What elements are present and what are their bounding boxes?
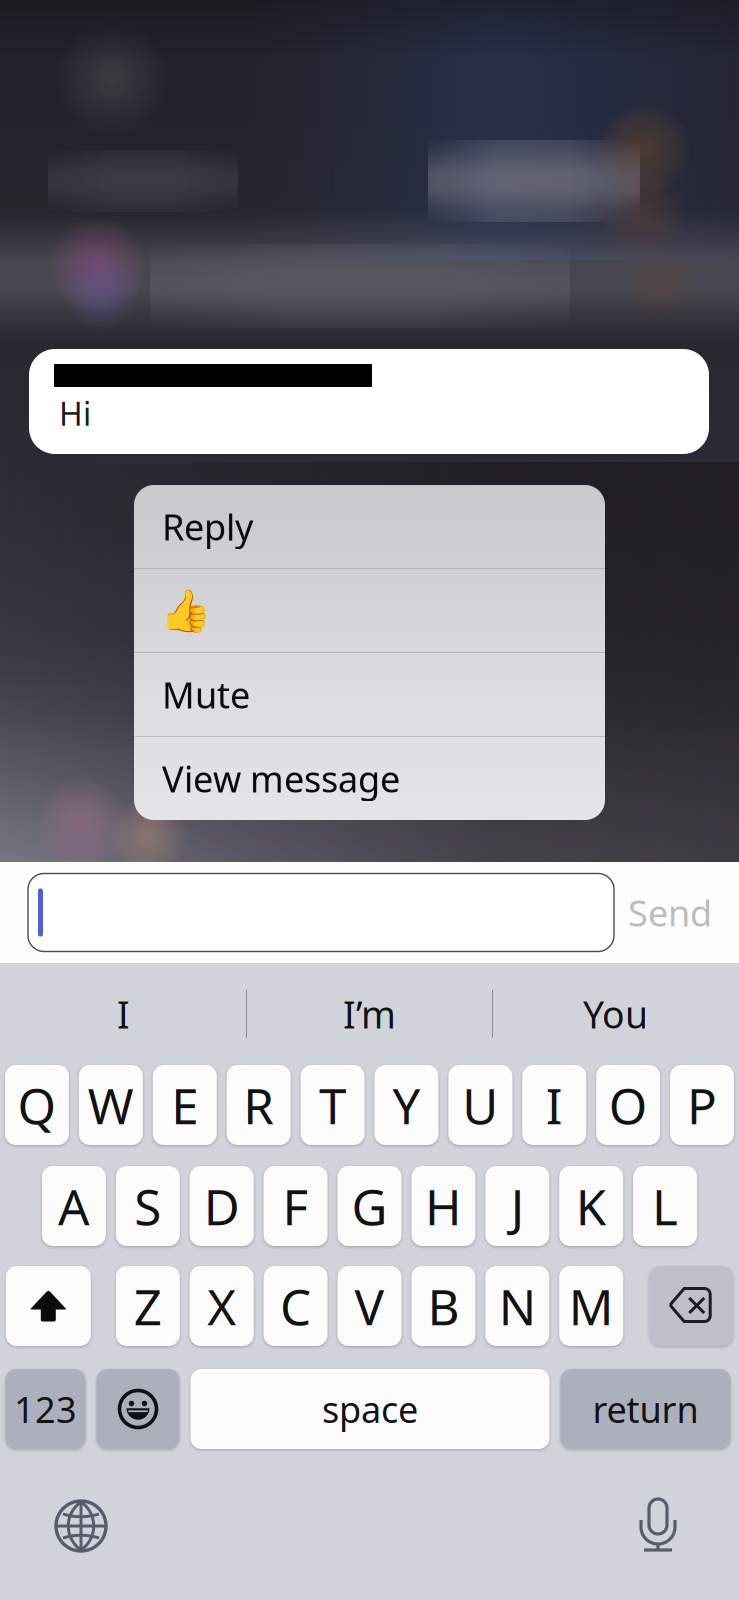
staticText: W [88,1072,134,1138]
staticText: P [687,1072,717,1138]
staticText: G [351,1173,387,1239]
staticText: H [425,1173,462,1239]
button[interactable]: P [670,1065,734,1145]
button[interactable]: O [596,1065,660,1145]
staticText: View message [162,755,400,802]
staticText: return [592,1385,698,1433]
button[interactable]: T [301,1065,365,1145]
staticText: C [280,1273,311,1339]
staticText: M [569,1273,614,1339]
button[interactable]: U [448,1065,512,1145]
button[interactable]: E [153,1065,217,1145]
staticText: K [576,1173,607,1239]
button[interactable]: K [559,1166,623,1246]
button[interactable]: Z [116,1266,180,1346]
button[interactable]: Reply [134,485,605,568]
button[interactable]: Send [616,873,724,951]
staticText: R [243,1072,274,1138]
staticText: N [499,1273,536,1339]
button[interactable]: G [337,1166,401,1246]
button[interactable]: D [190,1166,254,1246]
button[interactable]: View message [134,737,605,820]
staticText: U [462,1072,498,1138]
button[interactable]: M [559,1266,623,1346]
button[interactable]: A [42,1166,106,1246]
staticText: 👍 [160,587,211,634]
staticText: F [283,1173,309,1239]
staticText: Y [392,1072,420,1138]
staticText: space [322,1385,418,1433]
staticText: Mute [162,671,250,718]
button[interactable]: return [560,1369,730,1449]
button[interactable]: Dictation [637,1499,679,1553]
button[interactable] [96,1369,179,1449]
button[interactable]: I’m [247,963,492,1065]
staticText: A [58,1173,90,1239]
button[interactable]: L [633,1166,697,1246]
staticText: B [427,1273,459,1339]
button[interactable]: space [190,1369,549,1449]
staticText: T [319,1072,346,1138]
button[interactable]: I [1,963,246,1065]
button[interactable]: J [485,1166,549,1246]
button[interactable]: N [485,1266,549,1346]
button[interactable]: X [190,1266,254,1346]
staticText: X [207,1273,236,1339]
button[interactable]: Next keyboard [54,1499,108,1553]
button[interactable]: Q [5,1065,69,1145]
staticText: You [583,989,648,1039]
staticText: Z [134,1273,162,1339]
staticText: Reply [162,503,253,550]
button[interactable]: W [79,1065,143,1145]
button[interactable]: S [116,1166,180,1246]
button[interactable]: B [411,1266,475,1346]
button[interactable]: R [227,1065,291,1145]
staticText: D [204,1173,240,1239]
button[interactable]: I [522,1065,586,1145]
staticText: I’m [343,989,396,1039]
staticText: L [652,1173,678,1239]
button[interactable]: V [337,1266,401,1346]
staticText: O [609,1072,648,1138]
staticText: V [354,1273,384,1339]
button[interactable]: C [264,1266,328,1346]
staticText: Q [17,1072,56,1138]
button[interactable]: Shift [6,1266,91,1346]
staticText: I [546,1072,563,1138]
button[interactable]: Hi [29,349,709,454]
button[interactable]: You [493,963,738,1065]
staticText: Hi [59,392,91,434]
staticText: 123 [14,1385,77,1433]
button[interactable]: Mute [134,653,605,736]
staticText: J [511,1173,524,1239]
button[interactable]: H [411,1166,475,1246]
staticText: S [134,1173,161,1239]
button[interactable]: 123 [5,1369,85,1449]
staticText: E [171,1072,198,1138]
button[interactable]: 👍 [134,569,605,652]
button[interactable]: F [264,1166,328,1246]
staticText: I [117,989,130,1039]
staticText: Send [628,889,712,936]
button[interactable]: Y [374,1065,438,1145]
button[interactable]: Delete [649,1266,733,1346]
